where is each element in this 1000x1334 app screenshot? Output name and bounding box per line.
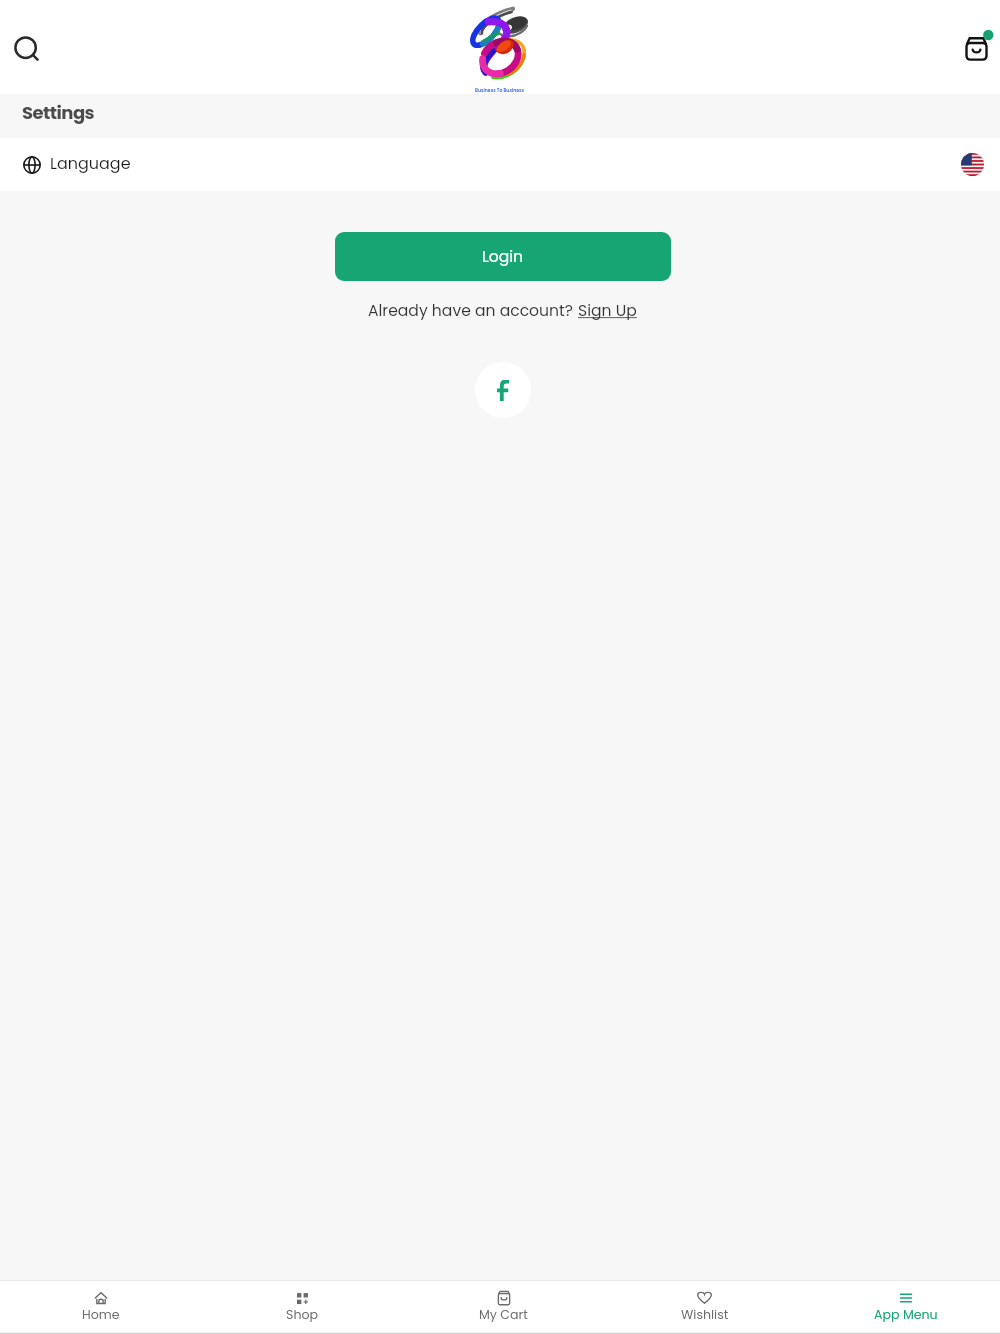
button[interactable]: Home bbox=[0, 1281, 202, 1333]
button[interactable]: My Cart bbox=[403, 1281, 604, 1333]
button[interactable]: Cart bbox=[953, 25, 997, 69]
button[interactable]: Language bbox=[0, 138, 1000, 191]
staticText: Business To Business bbox=[475, 87, 525, 93]
staticText: My Cart bbox=[479, 1306, 528, 1324]
staticText: Wishlist bbox=[681, 1306, 729, 1324]
staticText: Home bbox=[82, 1306, 120, 1324]
staticText: Settings bbox=[22, 100, 95, 125]
button[interactable]: Shop bbox=[202, 1281, 403, 1333]
staticText: Sign Up bbox=[578, 300, 637, 322]
button[interactable]: Login with Facebook bbox=[475, 362, 531, 418]
staticText: Language bbox=[50, 152, 131, 174]
other: Business To Business logo bbox=[465, 6, 535, 90]
button[interactable]: Wishlist bbox=[604, 1281, 805, 1333]
staticText: Login bbox=[482, 246, 524, 268]
staticText: Already have an account? bbox=[368, 300, 578, 322]
button[interactable]: Search bbox=[6, 26, 48, 68]
button[interactable]: Sign Up bbox=[578, 300, 637, 322]
button[interactable]: Login bbox=[335, 232, 671, 281]
button[interactable]: App Menu bbox=[805, 1281, 1000, 1333]
staticText: Shop bbox=[286, 1306, 319, 1324]
staticText: App Menu bbox=[874, 1306, 938, 1324]
